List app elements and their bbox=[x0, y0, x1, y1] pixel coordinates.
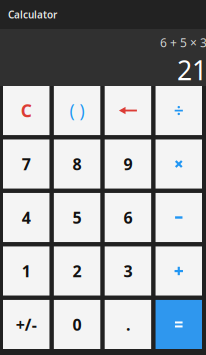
button[interactable]: 5 bbox=[54, 193, 100, 242]
button[interactable]: +/- bbox=[3, 300, 49, 349]
button[interactable]: Plus bbox=[156, 246, 202, 295]
button[interactable]: 7 bbox=[3, 139, 49, 189]
staticText: +/- bbox=[16, 314, 37, 335]
staticText: 6 + 5 × 3 bbox=[160, 34, 206, 51]
staticText: . bbox=[126, 314, 130, 335]
button[interactable]: ( ) bbox=[54, 86, 100, 135]
button[interactable]: 0 bbox=[54, 300, 100, 349]
button[interactable]: Divide bbox=[156, 86, 202, 135]
button[interactable]: 9 bbox=[105, 139, 151, 189]
staticText: 3 bbox=[123, 260, 132, 282]
staticText: 7 bbox=[22, 153, 31, 175]
staticText: 5 bbox=[73, 207, 82, 228]
staticText: C bbox=[21, 99, 32, 122]
staticText: 6 bbox=[123, 207, 132, 228]
button[interactable]: C bbox=[3, 86, 49, 135]
button[interactable]: 2 bbox=[54, 246, 100, 295]
staticText: 8 bbox=[73, 153, 82, 175]
staticText: 9 bbox=[123, 153, 132, 175]
button[interactable]: 4 bbox=[3, 193, 49, 242]
button[interactable]: 8 bbox=[54, 139, 100, 189]
button[interactable]: 1 bbox=[3, 246, 49, 295]
button[interactable]: Minus bbox=[156, 193, 202, 242]
staticText: 1 bbox=[22, 260, 31, 282]
staticText: 21 bbox=[177, 52, 206, 88]
staticText: 2 bbox=[73, 260, 82, 282]
staticText: 0 bbox=[73, 314, 82, 335]
staticText: ( ) bbox=[70, 99, 85, 122]
button[interactable]: . bbox=[105, 300, 151, 349]
staticText: Calculator bbox=[8, 8, 57, 21]
button[interactable]: Equals bbox=[156, 300, 202, 349]
button[interactable]: Multiply bbox=[156, 139, 202, 189]
button[interactable]: Backspace bbox=[105, 86, 151, 135]
button[interactable]: 6 bbox=[105, 193, 151, 242]
button[interactable]: 3 bbox=[105, 246, 151, 295]
staticText: 4 bbox=[22, 207, 31, 228]
